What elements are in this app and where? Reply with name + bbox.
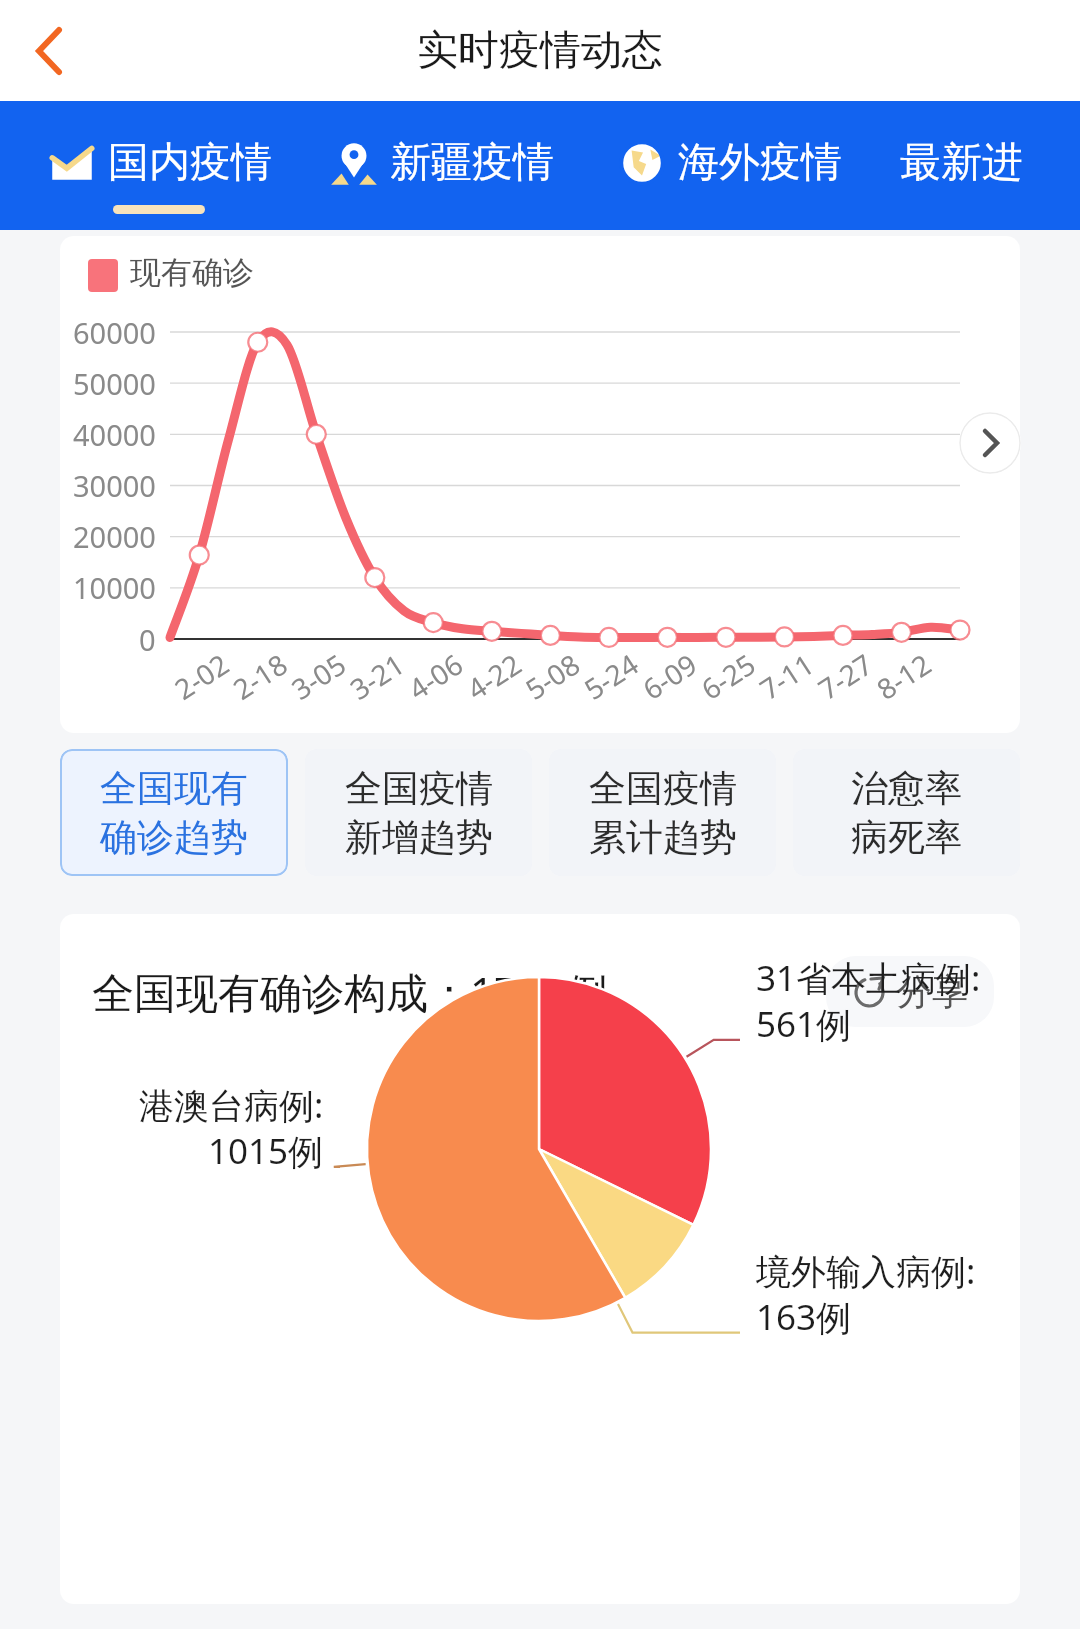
staticText: 分享 xyxy=(896,969,968,1014)
button[interactable]: 海外疫情 xyxy=(616,101,842,230)
button[interactable] xyxy=(60,236,1020,733)
staticText: 最新进 xyxy=(900,137,1023,189)
button[interactable]: 分享 xyxy=(826,956,994,1027)
staticText: 全国现有 确诊趋势 xyxy=(100,765,248,861)
button[interactable]: Next chart xyxy=(959,412,1021,474)
staticText: 海外疫情 xyxy=(678,137,842,189)
staticText: 国内疫情 xyxy=(108,137,272,189)
staticText: 新疆疫情 xyxy=(390,137,554,189)
staticText: 实时疫情动态 xyxy=(417,25,663,77)
staticText: 治愈率 病死率 xyxy=(851,765,962,861)
staticText: 全国疫情 新增趋势 xyxy=(345,765,493,861)
staticText: 全国现有确诊构成：1739例 xyxy=(92,963,609,1020)
button[interactable]: 新疆疫情 xyxy=(328,101,554,230)
button[interactable]: 治愈率 病死率 xyxy=(793,749,1020,876)
button[interactable]: 全国疫情 新增趋势 xyxy=(305,749,532,876)
button[interactable]: 最新进 xyxy=(900,101,1023,230)
button[interactable]: Back xyxy=(10,12,88,90)
button[interactable]: 全国疫情 累计趋势 xyxy=(549,749,776,876)
button[interactable]: 全国现有 确诊趋势 xyxy=(60,749,288,876)
staticText: 全国疫情 累计趋势 xyxy=(589,765,737,861)
button[interactable]: 国内疫情 xyxy=(46,101,272,230)
